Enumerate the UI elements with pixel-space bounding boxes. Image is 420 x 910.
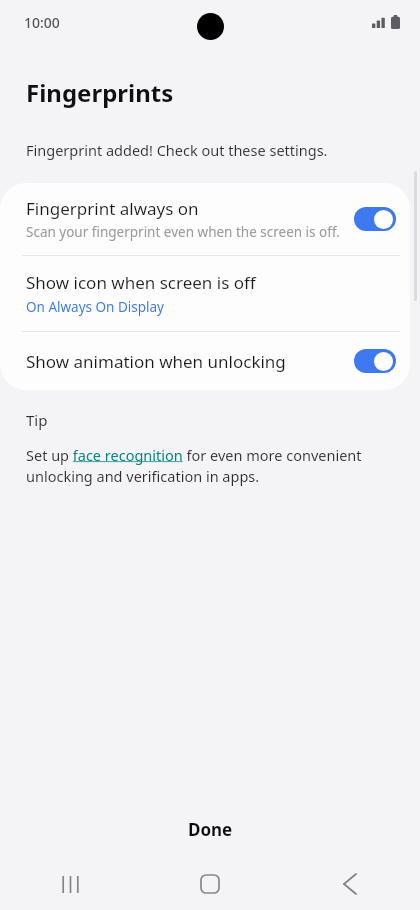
staticText: Fingerprints <box>26 76 174 109</box>
staticText: 10:00 <box>24 13 60 32</box>
button[interactable]: Fingerprint always on <box>0 183 410 255</box>
button[interactable]: Show icon when screen is off <box>0 256 410 331</box>
staticText: Fingerprint added! Check out these setti… <box>26 140 328 160</box>
staticText: Fingerprint always on <box>26 197 199 220</box>
button[interactable]: Back <box>280 858 420 910</box>
staticText: Show icon when screen is off <box>26 271 256 294</box>
staticText: Scan your fingerprint even when the scre… <box>26 223 340 241</box>
staticText: On Always On Display <box>26 298 164 316</box>
button[interactable]: Home <box>140 858 280 910</box>
button[interactable]: Toggle on <box>354 207 396 231</box>
button[interactable]: Recent apps <box>0 858 140 910</box>
button[interactable]: Toggle on <box>354 349 396 373</box>
staticText: Tip <box>26 410 48 430</box>
button[interactable]: Show animation when unlocking <box>0 332 410 390</box>
button[interactable]: Done <box>0 800 420 858</box>
staticText: Done <box>188 818 233 841</box>
staticText: Show animation when unlocking <box>26 350 342 373</box>
button[interactable]: Set up face recognition for even more co… <box>26 445 390 487</box>
